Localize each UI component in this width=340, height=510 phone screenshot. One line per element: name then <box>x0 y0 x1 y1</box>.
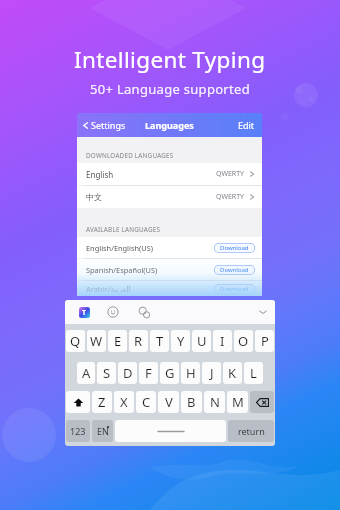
staticText: QWERTY <box>216 192 245 202</box>
staticText: S <box>103 364 111 382</box>
button[interactable]: W <box>87 330 106 352</box>
staticText: Q <box>70 332 81 350</box>
staticText: DOWNLOADED LANGUAGES <box>86 151 174 160</box>
button[interactable]: Stickers <box>138 306 151 319</box>
button[interactable]: P <box>255 330 274 352</box>
staticText: Settings <box>91 119 126 131</box>
staticText: A <box>82 364 91 382</box>
staticText: N <box>210 393 220 411</box>
button[interactable]: D <box>118 362 137 384</box>
button[interactable]: Hide keyboard <box>257 306 269 318</box>
staticText: K <box>228 364 237 382</box>
staticText: Z <box>98 393 106 411</box>
button[interactable]: Edit <box>238 119 262 131</box>
button[interactable]: V <box>158 391 179 413</box>
staticText: T <box>156 332 164 350</box>
staticText: T <box>82 308 87 318</box>
staticText: O <box>238 332 249 350</box>
staticText: P <box>261 332 269 350</box>
button[interactable]: F <box>139 362 158 384</box>
staticText: Languages <box>145 119 194 131</box>
button[interactable]: S <box>97 362 116 384</box>
button[interactable]: O <box>234 330 253 352</box>
staticText: E <box>114 332 122 350</box>
staticText: I <box>220 332 225 350</box>
button[interactable]: Z <box>92 391 112 413</box>
button[interactable]: Arabic/العربية <box>77 281 262 296</box>
staticText: W <box>90 332 103 350</box>
button[interactable]: English/English(US) <box>77 237 262 258</box>
staticText: English <box>86 169 114 180</box>
staticText: H <box>186 364 196 382</box>
staticText: Download <box>220 244 249 252</box>
button[interactable]: G <box>160 362 179 384</box>
staticText: X <box>120 393 128 411</box>
staticText: QWERTY <box>216 169 245 179</box>
button[interactable]: Q <box>66 330 85 352</box>
staticText: F <box>145 364 152 382</box>
staticText: Intelligent Typing <box>74 44 266 75</box>
button[interactable]: U <box>192 330 211 352</box>
button[interactable]: 123 <box>66 420 90 442</box>
button[interactable]: B <box>181 391 202 413</box>
staticText: V <box>165 393 173 411</box>
staticText: G <box>165 364 175 382</box>
staticText: M <box>232 393 244 411</box>
button[interactable]: Keyboard settings <box>79 307 90 318</box>
staticText: AVAILABLE LANGUAGES <box>86 225 161 234</box>
button[interactable]: R <box>129 330 148 352</box>
staticText: J <box>210 364 214 382</box>
button[interactable] <box>115 420 226 442</box>
staticText: D <box>123 364 133 382</box>
button[interactable]: E <box>108 330 127 352</box>
staticText: U <box>197 332 207 350</box>
button[interactable]: A <box>77 362 95 384</box>
staticText: Arabic/العربية <box>86 284 131 294</box>
staticText: EN <box>97 425 109 437</box>
button[interactable]: English <box>77 163 262 185</box>
button[interactable]: Download <box>214 284 255 294</box>
staticText: 50+ Language supported <box>90 80 250 98</box>
button[interactable]: K <box>223 362 242 384</box>
button[interactable]: return <box>228 420 274 442</box>
button[interactable]: Settings <box>82 119 126 131</box>
staticText: Download <box>220 285 249 293</box>
button[interactable]: J <box>202 362 221 384</box>
button[interactable]: T <box>150 330 169 352</box>
button[interactable]: Download <box>214 265 255 275</box>
button[interactable]: Emoji <box>107 306 119 318</box>
staticText: B <box>187 393 196 411</box>
button[interactable]: M <box>227 391 248 413</box>
button[interactable]: 中文 <box>77 186 262 208</box>
button[interactable]: Download <box>214 243 255 253</box>
button[interactable] <box>66 391 90 413</box>
button[interactable] <box>250 391 274 413</box>
staticText: L <box>250 364 257 382</box>
staticText: 123 <box>70 425 86 437</box>
staticText: English/English(US) <box>86 243 153 253</box>
button[interactable]: I <box>213 330 232 352</box>
button[interactable]: L <box>244 362 263 384</box>
button[interactable]: C <box>136 391 156 413</box>
staticText: Spanish/Español(US) <box>86 265 158 275</box>
button[interactable]: EN <box>92 420 113 442</box>
staticText: return <box>238 425 265 437</box>
staticText: 中文 <box>86 192 102 202</box>
button[interactable]: X <box>114 391 134 413</box>
button[interactable]: Spanish/Español(US) <box>77 259 262 280</box>
button[interactable]: H <box>181 362 200 384</box>
staticText: R <box>134 332 143 350</box>
staticText: Download <box>220 266 249 274</box>
button[interactable]: Y <box>171 330 190 352</box>
staticText: C <box>142 393 151 411</box>
button[interactable]: N <box>204 391 225 413</box>
staticText: Y <box>177 332 185 350</box>
